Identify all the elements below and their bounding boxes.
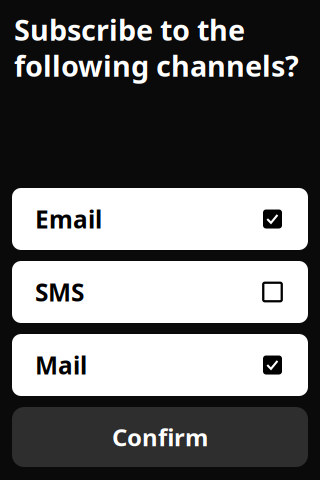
- staticText: following channels?: [14, 46, 299, 85]
- staticText: Email: [35, 202, 102, 236]
- staticText: SMS: [35, 275, 84, 309]
- staticText: Mail: [35, 348, 87, 382]
- button[interactable]: Mail: [12, 334, 308, 396]
- button[interactable]: Confirm: [12, 407, 308, 467]
- staticText: Subscribe to the: [14, 10, 245, 49]
- button[interactable]: SMS: [12, 261, 308, 323]
- button[interactable]: Email: [12, 188, 308, 250]
- staticText: Confirm: [112, 421, 208, 453]
